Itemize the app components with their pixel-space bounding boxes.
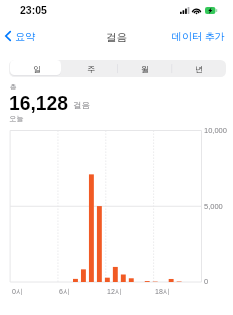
staticText: 걸음 [106, 31, 127, 44]
button[interactable]: 월 [118, 60, 172, 77]
staticText: 23:05 [20, 4, 47, 16]
staticText: 일 [33, 64, 41, 74]
staticText: 데이터 추가 [172, 30, 225, 43]
staticText: 5,000 [204, 202, 223, 210]
staticText: 18시 [155, 287, 170, 296]
button[interactable]: 요약 [3, 28, 37, 44]
button[interactable]: 주 [64, 60, 118, 77]
staticText: 6시 [59, 287, 70, 296]
staticText: 16,128 [9, 93, 69, 115]
staticText: 오늘 [9, 114, 24, 123]
staticText: 요약 [15, 30, 35, 43]
staticText: 총 [10, 82, 17, 91]
staticText: 걸음 [73, 100, 90, 111]
staticText: 주 [87, 64, 95, 74]
staticText: 월 [141, 64, 149, 74]
staticText: 12시 [107, 287, 122, 296]
staticText: 0시 [12, 287, 23, 296]
button[interactable]: 일 [9, 60, 64, 77]
button[interactable]: 데이터 추가 [172, 28, 233, 44]
button[interactable]: 년 [172, 60, 226, 77]
staticText: 10,000 [204, 126, 227, 134]
staticText: 0 [204, 277, 209, 285]
staticText: 년 [195, 64, 203, 74]
